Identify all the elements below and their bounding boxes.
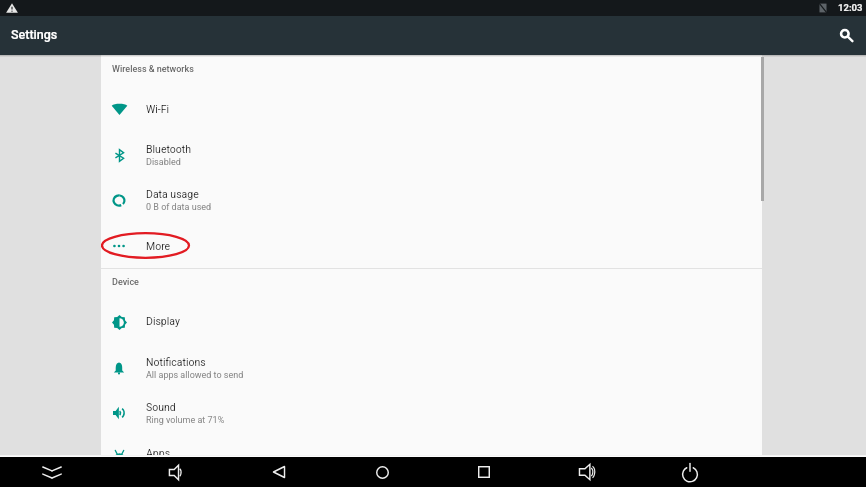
button[interactable]: Home <box>361 457 403 487</box>
staticText: Wi-Fi <box>146 103 170 115</box>
button[interactable]: More <box>101 223 762 269</box>
button[interactable]: Sound <box>101 390 762 436</box>
button[interactable]: Power <box>669 457 711 487</box>
button[interactable]: Wireless & networks <box>101 56 762 78</box>
staticText: 0 B of data used <box>146 202 212 213</box>
button[interactable]: Bluetooth <box>101 132 762 178</box>
staticText: All apps allowed to send <box>146 370 244 381</box>
staticText: Disabled <box>146 157 181 168</box>
staticText: Bluetooth <box>146 143 191 155</box>
button[interactable]: Back <box>258 457 300 487</box>
button[interactable]: Apps <box>101 436 762 457</box>
button[interactable]: Notifications <box>101 345 762 391</box>
button[interactable]: Volume up <box>566 457 608 487</box>
staticText: Settings <box>11 27 58 42</box>
staticText: Wireless & networks <box>112 64 194 75</box>
button[interactable]: Volume down <box>155 457 197 487</box>
staticText: Apps <box>146 447 171 457</box>
button[interactable]: Hide keyboard <box>31 457 73 487</box>
staticText: Data usage <box>146 188 199 200</box>
staticText: 12:03 <box>838 2 863 13</box>
button[interactable]: Data usage <box>101 177 762 223</box>
button[interactable]: Wi-Fi <box>101 86 762 132</box>
staticText: More <box>146 240 171 252</box>
button[interactable]: Recent apps <box>463 457 505 487</box>
staticText: Sound <box>146 401 176 413</box>
button[interactable]: Display <box>101 298 762 344</box>
staticText: Display <box>146 315 180 327</box>
staticText: Device <box>112 277 139 288</box>
button[interactable]: Search <box>826 16 866 55</box>
staticText: Notifications <box>146 356 206 368</box>
button[interactable]: Device <box>101 269 762 291</box>
staticText: Ring volume at 71% <box>146 415 225 426</box>
